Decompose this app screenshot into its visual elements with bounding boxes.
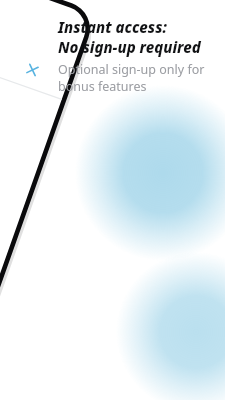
button[interactable]: Instant access: bbox=[58, 17, 223, 94]
staticText: No sign-up required bbox=[58, 37, 201, 57]
staticText: Instant access: bbox=[58, 17, 167, 37]
other: Wheelchair access question screenshot bbox=[0, 0, 225, 400]
staticText: Optional sign-up only for bonus features bbox=[58, 61, 205, 94]
